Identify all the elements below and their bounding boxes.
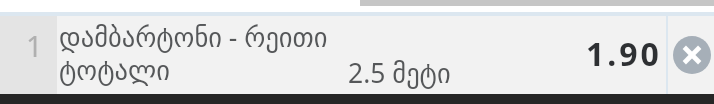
button[interactable]: 1 bbox=[0, 16, 714, 94]
button[interactable]: Remove item bbox=[673, 36, 711, 74]
staticText: ტოტალი bbox=[59, 55, 170, 86]
staticText: 1 bbox=[26, 26, 43, 65]
staticText: 2.5 მეტი bbox=[348, 55, 451, 91]
staticText: დამბარტონი - რეითი bbox=[59, 19, 328, 55]
staticText: 1.90 bbox=[586, 32, 662, 76]
